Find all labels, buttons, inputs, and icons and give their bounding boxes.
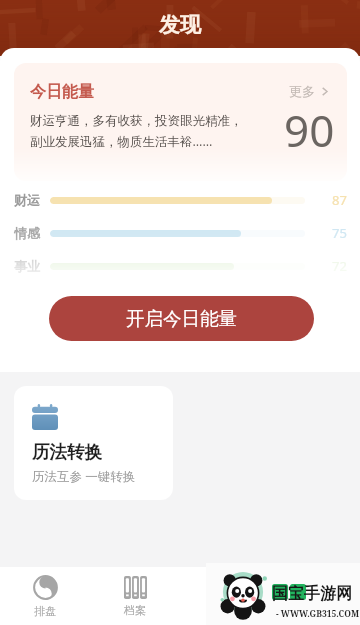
button[interactable]: Me bbox=[270, 567, 360, 625]
staticText: 开启今日能量 bbox=[126, 307, 237, 330]
staticText: 75 bbox=[332, 224, 347, 242]
staticText: 发现 bbox=[159, 12, 201, 38]
staticText: 事业 bbox=[14, 258, 50, 274]
other: Chart bbox=[33, 575, 58, 600]
button[interactable]: 历法转换 bbox=[14, 386, 173, 500]
staticText: 历法转换 bbox=[32, 441, 102, 463]
staticText: 历法互参 一键转换 bbox=[32, 468, 136, 485]
staticText: 87 bbox=[332, 191, 347, 209]
staticText: 我的 bbox=[304, 604, 326, 618]
button[interactable]: 更多 bbox=[289, 83, 329, 99]
button[interactable]: Almanac bbox=[180, 567, 270, 625]
staticText: 72 bbox=[332, 257, 347, 275]
staticText: 财运亨通，多有收获，投资眼光精准， 副业发展迅猛，物质生活丰裕…… bbox=[30, 113, 243, 149]
staticText: 情感 bbox=[14, 225, 50, 241]
other: Records bbox=[124, 576, 147, 599]
staticText: - WWW.GB315.COM - bbox=[276, 608, 360, 620]
button[interactable]: 开启今日能量 bbox=[49, 296, 314, 341]
staticText: 国宝手游网 bbox=[272, 584, 352, 604]
staticText: 90 bbox=[284, 100, 335, 160]
other: Me bbox=[303, 575, 328, 600]
staticText: 档案 bbox=[124, 603, 146, 617]
staticText: 排盘 bbox=[34, 604, 56, 618]
button[interactable]: Chart bbox=[0, 567, 90, 625]
staticText: 财运 bbox=[14, 192, 50, 208]
staticText: 黄历 bbox=[214, 604, 236, 618]
other: Almanac bbox=[213, 575, 238, 600]
button[interactable]: Records bbox=[90, 567, 180, 625]
staticText: 更多 bbox=[289, 83, 315, 99]
staticText: 今日能量 bbox=[30, 82, 94, 102]
